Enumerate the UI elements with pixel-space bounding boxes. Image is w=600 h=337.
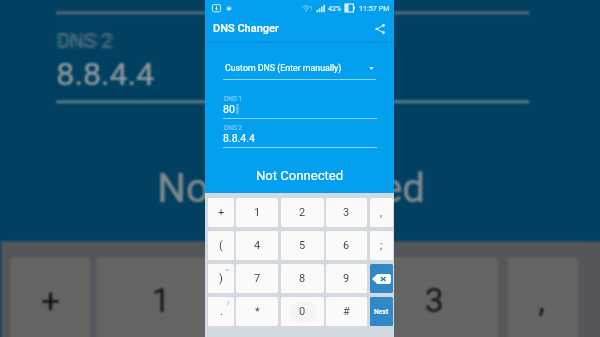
button[interactable]: # (326, 297, 367, 326)
button[interactable]: 2 (281, 198, 324, 227)
button[interactable]: , (370, 198, 393, 227)
staticText: Not Connected (1, 165, 581, 211)
staticText: . (220, 305, 223, 318)
staticText: DNS 2 (59, 30, 118, 54)
staticText: DNS 2 (56, 30, 115, 54)
button[interactable]: 0 (281, 297, 324, 326)
staticText: 1 (151, 281, 173, 321)
button[interactable]: 2 (234, 257, 366, 337)
staticText: , (380, 206, 383, 219)
staticText: + (41, 281, 62, 321)
staticText: 5 (299, 239, 306, 252)
staticText: , (538, 281, 547, 321)
staticText: DNS 1 (224, 95, 243, 103)
staticText: * (255, 305, 260, 318)
staticText: 3 (343, 206, 350, 219)
button[interactable]: Backspace (370, 264, 393, 293)
button[interactable]: + (208, 198, 234, 227)
button[interactable]: Next (370, 297, 393, 326)
staticText: 0 (299, 305, 306, 318)
staticText: 2 (290, 281, 311, 321)
button[interactable]: 3 (326, 198, 367, 227)
button[interactable]: Custom DNS (Enter manually) (223, 58, 376, 82)
button[interactable]: 3 (372, 257, 498, 337)
button[interactable]: 4 (236, 231, 278, 260)
staticText: ; (380, 239, 383, 252)
staticText: Custom DNS (Enter manually) (225, 63, 342, 73)
staticText: 80 (223, 103, 235, 115)
staticText: 11:57 PM (359, 4, 390, 12)
staticText: Not Connected (1, 165, 581, 211)
button[interactable]: 7 (236, 264, 278, 293)
staticText: 6 (343, 239, 350, 252)
button[interactable]: Share (372, 21, 388, 37)
button[interactable]: 1 (96, 257, 225, 337)
staticText: 8.8.4.4 (223, 132, 255, 144)
staticText: / (227, 299, 230, 306)
staticText: DNS Changer (213, 22, 279, 35)
staticText: 4 (254, 239, 261, 252)
button[interactable]: 9 (326, 264, 367, 293)
staticText: 9 (343, 272, 350, 285)
staticText: 42% (328, 4, 342, 12)
button[interactable]: , (507, 257, 578, 337)
staticText: ~ (225, 266, 230, 273)
button[interactable]: ; (370, 231, 393, 260)
staticText: # (343, 305, 350, 318)
button[interactable]: 8 (281, 264, 324, 293)
staticText: 8 (299, 272, 306, 285)
staticText: 1 (254, 206, 261, 219)
button[interactable]: * (236, 297, 278, 326)
staticText: Not Connected (205, 168, 394, 183)
staticText: 2 (299, 206, 306, 219)
button[interactable]: 5 (281, 231, 324, 260)
staticText: ) (219, 272, 223, 285)
button[interactable]: 6 (326, 231, 367, 260)
staticText: 3 (425, 281, 446, 321)
staticText: 8.8.4.4 (56, 54, 154, 91)
staticText: DNS 2 (224, 124, 243, 132)
staticText: 7 (254, 272, 261, 285)
staticText: ( (219, 239, 223, 252)
staticText: + (218, 206, 225, 219)
button[interactable]: 1 (236, 198, 278, 227)
staticText: Next (374, 308, 389, 316)
button[interactable]: + (10, 257, 90, 337)
staticText: 8.8.4.4 (56, 54, 154, 91)
button[interactable]: . (208, 297, 234, 326)
button[interactable]: ) (208, 264, 234, 293)
button[interactable]: ( (208, 231, 234, 260)
